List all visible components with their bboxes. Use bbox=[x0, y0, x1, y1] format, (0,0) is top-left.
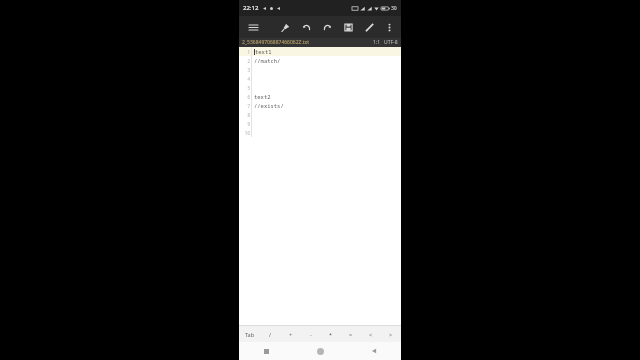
staticText: 7 bbox=[247, 103, 250, 109]
staticText: UTF-8 bbox=[384, 39, 398, 46]
button[interactable]: < bbox=[361, 326, 381, 342]
staticText: 9 bbox=[247, 121, 250, 127]
button[interactable]: Pin bbox=[277, 19, 293, 35]
button[interactable]: 4 bbox=[239, 74, 401, 83]
button[interactable]: Undo bbox=[298, 19, 314, 35]
button[interactable]: * bbox=[321, 326, 341, 342]
button[interactable]: 6 bbox=[239, 92, 401, 101]
staticText: 4 bbox=[247, 76, 250, 82]
button[interactable]: 5 bbox=[239, 83, 401, 92]
button[interactable]: 9 bbox=[239, 119, 401, 128]
staticText: = bbox=[349, 331, 353, 338]
staticText: / bbox=[269, 331, 272, 338]
staticText: + bbox=[289, 331, 293, 338]
button[interactable]: 10 bbox=[239, 128, 401, 137]
button[interactable]: = bbox=[341, 326, 361, 342]
button[interactable]: 8 bbox=[239, 110, 401, 119]
staticText: text1 bbox=[255, 48, 272, 55]
staticText: 30 bbox=[391, 5, 397, 12]
staticText: * bbox=[329, 331, 333, 338]
staticText: 2_536849706887466062Z.txt bbox=[242, 39, 310, 46]
button[interactable]: Save bbox=[340, 19, 356, 35]
staticText: 1:1 bbox=[373, 39, 381, 46]
staticText: 6 bbox=[247, 94, 250, 100]
button[interactable]: Back bbox=[347, 342, 401, 360]
button[interactable]: Edit bbox=[361, 19, 377, 35]
staticText: //exists/ bbox=[254, 102, 284, 109]
staticText: - bbox=[310, 331, 312, 338]
button[interactable]: 1 bbox=[239, 47, 401, 56]
button[interactable]: 2_536849706887466062Z.txt bbox=[239, 38, 401, 47]
button[interactable]: / bbox=[260, 326, 281, 342]
staticText: > bbox=[389, 331, 393, 338]
staticText: Tab bbox=[245, 331, 255, 338]
button[interactable]: Menu bbox=[245, 19, 261, 35]
button[interactable]: 3 bbox=[239, 65, 401, 74]
button[interactable]: + bbox=[281, 326, 301, 342]
button[interactable]: Tab bbox=[239, 326, 260, 342]
staticText: 8 bbox=[247, 112, 250, 118]
button[interactable]: 7 bbox=[239, 101, 401, 110]
button[interactable]: - bbox=[301, 326, 321, 342]
staticText: 10 bbox=[244, 130, 250, 136]
button[interactable]: Recent apps bbox=[239, 342, 293, 360]
button[interactable]: > bbox=[381, 326, 401, 342]
button[interactable]: Redo bbox=[319, 19, 335, 35]
button[interactable]: More options bbox=[381, 19, 397, 35]
staticText: 22:12 bbox=[243, 4, 259, 12]
button[interactable]: Home bbox=[293, 342, 347, 360]
staticText: 5 bbox=[247, 85, 250, 91]
staticText: //match/ bbox=[254, 57, 281, 64]
staticText: < bbox=[369, 331, 373, 338]
staticText: 1 bbox=[247, 49, 250, 55]
button[interactable]: 2 bbox=[239, 56, 401, 65]
staticText: 3 bbox=[247, 67, 250, 73]
staticText: 2 bbox=[247, 58, 250, 64]
staticText: text2 bbox=[254, 93, 271, 100]
